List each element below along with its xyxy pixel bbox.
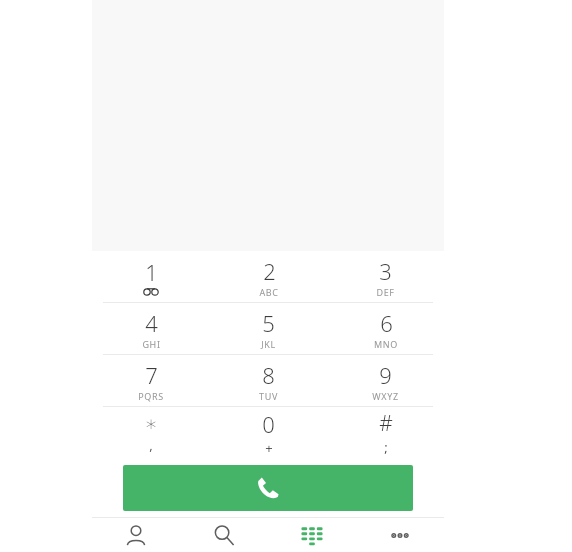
button[interactable]: Call (123, 465, 413, 511)
button[interactable]: 5 (210, 303, 327, 354)
staticText: 0 (262, 409, 275, 439)
button[interactable]: 1 (92, 251, 210, 302)
staticText: 4 (145, 308, 158, 338)
staticText: 8 (262, 360, 275, 390)
button[interactable]: Contacts (92, 518, 180, 552)
staticText: , (149, 436, 153, 454)
staticText: DEF (376, 286, 395, 298)
staticText: 1 (145, 257, 158, 287)
staticText: 7 (145, 360, 158, 390)
staticText: 9 (379, 360, 392, 390)
button[interactable]: # (327, 407, 444, 458)
staticText: ∗ (144, 412, 158, 436)
button[interactable]: Dialpad (268, 518, 356, 552)
staticText: 5 (262, 308, 275, 338)
staticText: ABC (259, 286, 279, 298)
button[interactable]: Search (180, 518, 268, 552)
button[interactable]: 8 (210, 355, 327, 406)
staticText: + (265, 439, 273, 457)
button[interactable]: 0 (210, 407, 327, 458)
button[interactable]: More options (356, 518, 444, 552)
staticText: PQRS (138, 390, 164, 402)
button[interactable]: 3 (327, 251, 444, 302)
staticText: JKL (261, 338, 276, 350)
button[interactable]: ∗ (92, 407, 210, 458)
staticText: 3 (379, 256, 392, 286)
button[interactable]: 7 (92, 355, 210, 406)
staticText: WXYZ (372, 390, 399, 402)
button[interactable]: 9 (327, 355, 444, 406)
button[interactable]: 2 (210, 251, 327, 302)
staticText: # (379, 409, 393, 438)
button[interactable]: 4 (92, 303, 210, 354)
staticText: TUV (259, 390, 278, 402)
staticText: GHI (142, 338, 161, 350)
staticText: MNO (374, 338, 398, 350)
staticText: 6 (380, 308, 393, 338)
button[interactable]: 6 (327, 303, 444, 354)
staticText: ; (384, 438, 388, 456)
staticText: 2 (263, 256, 276, 286)
